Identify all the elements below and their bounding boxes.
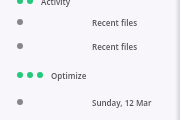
button[interactable]: Sunday, 12 Mar	[0, 91, 180, 113]
button[interactable]: Optimize	[0, 64, 180, 86]
staticText: Activity	[41, 0, 71, 7]
button[interactable]: Activity	[0, 0, 180, 12]
staticText: Recent files	[92, 17, 138, 28]
staticText: Optimize	[51, 70, 87, 81]
staticText: Sunday, 12 Mar	[92, 97, 152, 108]
button[interactable]: Recent files	[0, 11, 180, 33]
button[interactable]: Recent files	[0, 35, 180, 57]
staticText: Recent files	[92, 41, 138, 52]
